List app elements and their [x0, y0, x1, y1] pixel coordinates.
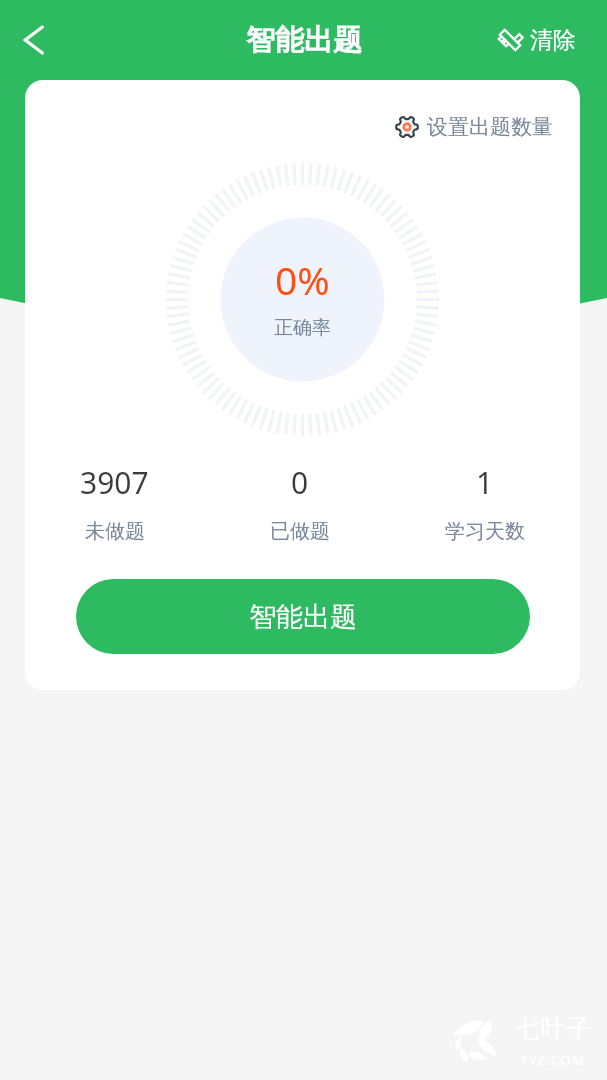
staticText: 设置出题数量 — [427, 114, 553, 140]
staticText: 正确率 — [274, 316, 331, 340]
staticText: 0 — [291, 462, 309, 503]
staticText: 学习天数 — [445, 519, 525, 544]
staticText: 智能出题 — [249, 600, 357, 634]
staticText: 3907 — [80, 462, 149, 503]
staticText: 1 — [476, 462, 494, 503]
button[interactable]: 设置出题数量 — [395, 114, 580, 140]
staticText: 七叶子 — [514, 1013, 592, 1044]
staticText: 已做题 — [270, 519, 330, 544]
staticText: 智能出题 — [246, 22, 362, 59]
staticText: 清除 — [530, 26, 576, 55]
button[interactable]: 智能出题 — [76, 579, 530, 654]
button[interactable]: Back — [0, 0, 68, 80]
staticText: 7YZ.COM — [520, 1051, 586, 1069]
staticText: 0% — [275, 253, 330, 306]
button[interactable]: 清除 — [487, 0, 607, 80]
staticText: 未做题 — [85, 519, 145, 544]
